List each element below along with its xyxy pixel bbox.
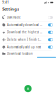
staticText: Delete when I finish them bbox=[7, 38, 42, 41]
button[interactable]: Automatically download new bbox=[0, 21, 56, 29]
button[interactable]: Download bbox=[24, 85, 32, 93]
staticText: Dark mode bbox=[7, 16, 21, 19]
staticText: 9:41 bbox=[2, 1, 9, 4]
button[interactable]: Download the highest quality bbox=[0, 29, 56, 36]
button[interactable]: Automatically add up next bbox=[0, 44, 56, 51]
staticText: Download the highest quality bbox=[7, 30, 42, 34]
staticText: Settings bbox=[2, 6, 19, 12]
button[interactable]: Delete when I finish them bbox=[0, 36, 56, 44]
button[interactable]: Dark mode bbox=[0, 14, 56, 21]
staticText: Automatically download new bbox=[7, 23, 42, 27]
button[interactable]: Download location bbox=[0, 51, 56, 58]
staticText: Download location bbox=[7, 52, 33, 55]
staticText: Automatically add up next bbox=[7, 45, 41, 49]
